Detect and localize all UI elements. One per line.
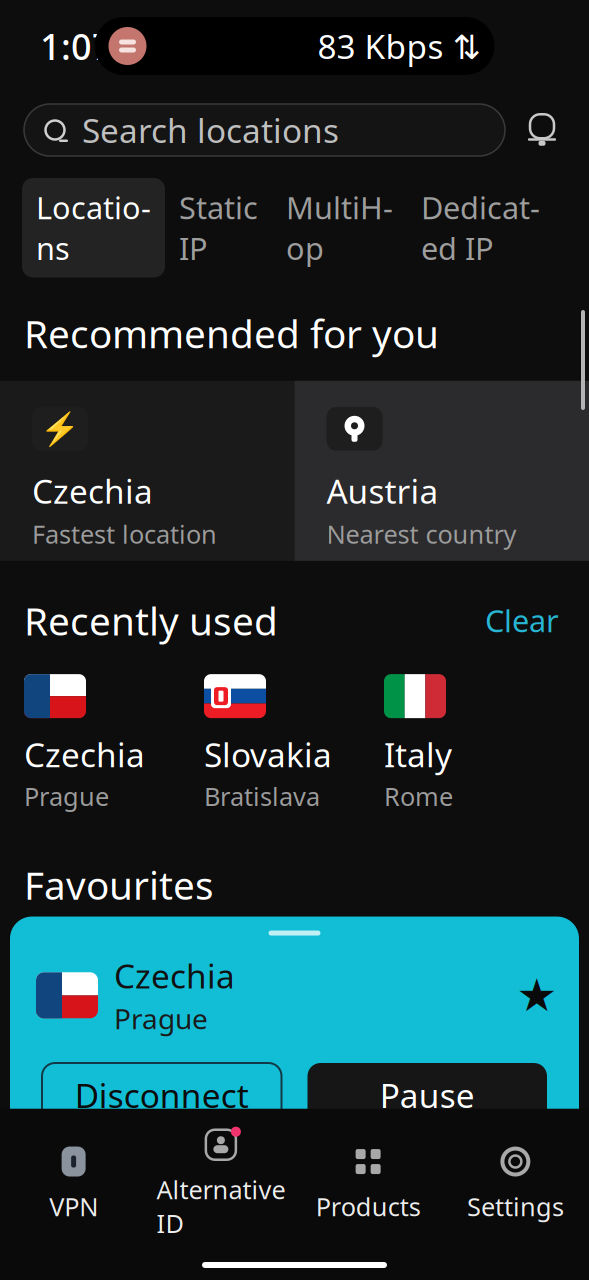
button[interactable]: Favourite [521, 979, 553, 1011]
staticText: VPN [49, 1189, 98, 1223]
staticText: Czechia [102, 938, 223, 983]
staticText: Recommended for you [24, 307, 439, 359]
staticText: 83 Kbps ⇅ [317, 24, 480, 68]
staticText: Czechia [32, 469, 153, 513]
staticText: Prague [114, 1000, 208, 1037]
button[interactable]: Disconnect [42, 1063, 281, 1127]
button[interactable]: Products [294, 1143, 442, 1223]
staticText: ⚡ [40, 410, 80, 447]
button[interactable]: Czechia [24, 674, 204, 813]
button[interactable]: Dedicated IP [407, 178, 554, 277]
staticText: Disconnect [75, 1073, 249, 1117]
button[interactable]: Static IP [165, 178, 272, 277]
button[interactable]: Locations [22, 178, 165, 277]
staticText: Fastest location [32, 517, 217, 551]
staticText: Alternative ID [156, 1173, 285, 1240]
staticText: Pause [380, 1073, 475, 1117]
button[interactable]: Slovakia [204, 674, 384, 813]
button[interactable]: VPN [0, 1143, 147, 1223]
staticText: Recently used [24, 595, 278, 646]
staticText: Search locations [82, 108, 339, 152]
staticText: Prague [24, 779, 109, 813]
button[interactable]: Czechia [0, 910, 589, 1018]
staticText: Static IP [179, 187, 258, 268]
button[interactable]: Clear [479, 596, 565, 645]
staticText: ★ [516, 970, 557, 1021]
staticText: Slovakia [204, 732, 332, 776]
staticText: Algiers - Virtual location [94, 1122, 378, 1156]
staticText: Italy [384, 732, 452, 776]
staticText: MultiHop [286, 187, 393, 268]
button[interactable]: Italy [384, 674, 564, 813]
button[interactable]: Settings [442, 1143, 589, 1223]
button[interactable]: Austria [294, 381, 589, 561]
button[interactable]: ⚡ [0, 381, 294, 561]
staticText: Clear [485, 600, 559, 641]
button[interactable]: MultiHop [272, 178, 407, 277]
staticText: Locations [36, 187, 151, 268]
button[interactable]: Search locations [24, 104, 505, 156]
staticText: Favourites [24, 859, 214, 910]
staticText: ★ [525, 953, 566, 1004]
staticText: Czechia [24, 732, 145, 776]
button[interactable]: Alternative ID [147, 1127, 294, 1240]
button[interactable]: Pause [307, 1063, 547, 1127]
staticText: Nearest country [326, 517, 516, 551]
staticText: Dedicated IP [421, 187, 540, 268]
staticText: Products [316, 1189, 421, 1223]
staticText: Czechia [114, 954, 235, 998]
staticText: 1:07 [40, 22, 113, 70]
staticText: Rome [384, 779, 453, 813]
button[interactable]: Notifications [519, 104, 565, 156]
staticText: Austria [326, 469, 438, 513]
staticText: Prague [102, 985, 187, 1018]
staticText: Settings [467, 1189, 564, 1223]
staticText: Bratislava [204, 779, 320, 813]
